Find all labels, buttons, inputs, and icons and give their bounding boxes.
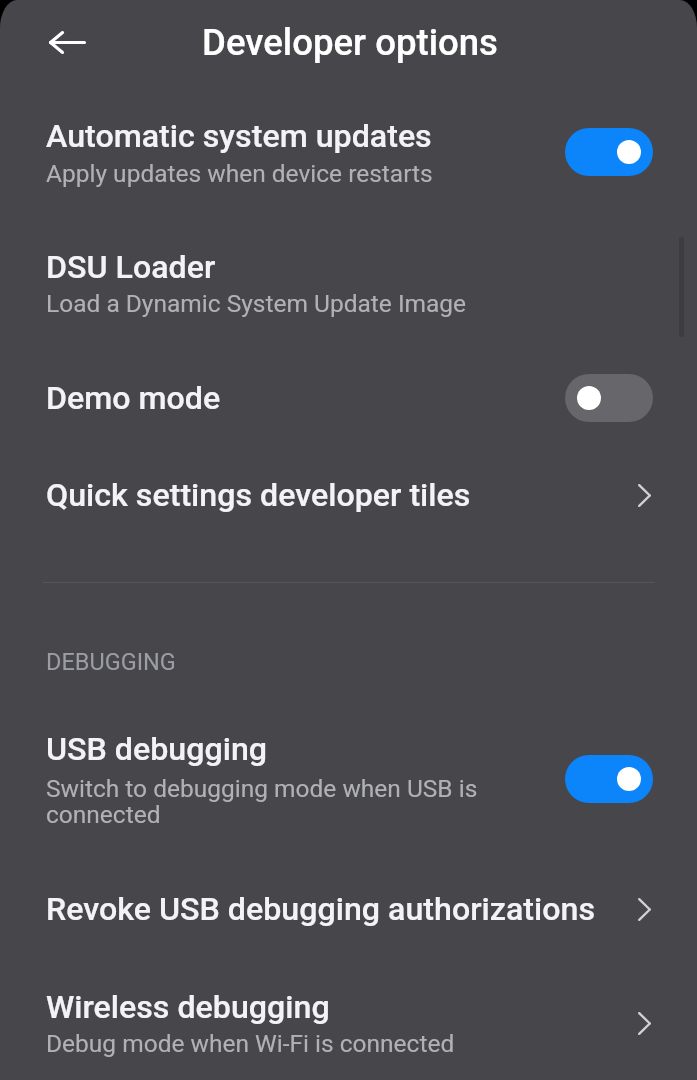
button[interactable]: Open [622,1001,666,1045]
staticText: Quick settings developer tiles [46,476,471,514]
staticText: Automatic system updates [46,117,432,155]
button[interactable]: Switch on [565,128,653,176]
staticText: Apply updates when device restarts [46,161,433,187]
button[interactable]: DSU Loader [0,248,697,317]
button[interactable]: Automatic system updates [0,117,697,187]
button[interactable]: Demo mode [0,370,697,426]
button[interactable]: Open [622,887,666,931]
staticText: Switch to debugging mode when USB is con… [46,776,478,828]
staticText: USB debugging [46,730,268,768]
staticText: DSU Loader [46,248,216,286]
staticText: Debug mode when Wi-Fi is connected [46,1031,455,1057]
button[interactable]: Switch on [565,755,653,803]
staticText: Wireless debugging [46,988,330,1026]
button[interactable]: USB debugging [0,730,697,828]
staticText: Revoke USB debugging authorizations [46,890,596,928]
button[interactable]: Revoke USB debugging authorizations [0,881,697,937]
staticText: Developer options [202,21,498,64]
button[interactable]: Switch off [565,374,653,422]
button[interactable]: Quick settings developer tiles [0,467,697,523]
staticText: DEBUGGING [46,648,176,676]
button[interactable]: Open [622,473,666,517]
staticText: Load a Dynamic System Update Image [46,291,467,317]
button[interactable]: Back [39,14,95,70]
button[interactable]: Wireless debugging [0,988,697,1057]
staticText: Demo mode [46,379,221,417]
